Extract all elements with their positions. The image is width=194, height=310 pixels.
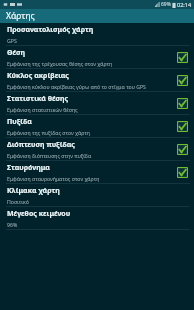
staticText: 02:14: [177, 1, 192, 8]
staticText: Κλίμακα χάρτη: [7, 186, 60, 196]
staticText: Χάρτης: [6, 10, 35, 22]
staticText: Προσανατολισμός χάρτη: [7, 25, 94, 35]
button[interactable]: Κλίμακα χάρτη: [0, 184, 194, 206]
button[interactable]: Διόπτευση πυξίδας: [0, 138, 194, 160]
button[interactable]: Στατιστικά θέσης: [0, 92, 194, 114]
button[interactable]: Σταυρόνημα: [0, 161, 194, 183]
staticText: Εμφάνιση διόπτευσης στην πυξίδα: [7, 152, 92, 159]
staticText: 69%: [161, 1, 171, 8]
staticText: Μέγεθος κειμένου: [7, 209, 71, 219]
staticText: Ποσιτικό: [7, 198, 29, 205]
staticText: GPS: [7, 37, 17, 44]
staticText: Εμφάνιση της πυξίδας στον χάρτη: [7, 129, 90, 136]
button[interactable]: Toggle option: [176, 74, 189, 87]
button[interactable]: Toggle option: [176, 143, 189, 156]
staticText: Εμφάνιση της τρέχουσας θέσης στον χάρτη: [7, 60, 113, 67]
button[interactable]: Μέγεθος κειμένου: [0, 207, 194, 229]
staticText: Εμφάνιση κύκλου ακρίβειας γύρω από το στ…: [7, 83, 146, 90]
button[interactable]: Toggle option: [176, 166, 189, 179]
button[interactable]: Κύκλος ακρίβειας: [0, 69, 194, 91]
staticText: Θέση: [7, 48, 26, 58]
staticText: Κύκλος ακρίβειας: [7, 71, 69, 81]
staticText: Στατιστικά θέσης: [7, 94, 69, 104]
button[interactable]: Θέση: [0, 46, 194, 68]
button[interactable]: Προσανατολισμός χάρτη: [0, 23, 194, 45]
button[interactable]: Toggle option: [176, 120, 189, 133]
staticText: Εμφάνιση στατιστικών θέσης: [7, 106, 78, 113]
staticText: Πυξίδα: [7, 117, 32, 127]
staticText: Διόπτευση πυξίδας: [7, 140, 75, 150]
button[interactable]: Πυξίδα: [0, 115, 194, 137]
button[interactable]: Toggle option: [176, 51, 189, 64]
staticText: Εμφάνιση σταυρονήματος στον χάρτη: [7, 175, 100, 182]
button[interactable]: Toggle option: [176, 97, 189, 110]
staticText: 96%: [7, 221, 18, 228]
staticText: Σταυρόνημα: [7, 163, 50, 173]
